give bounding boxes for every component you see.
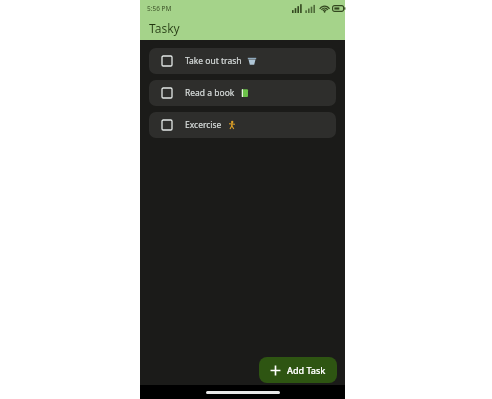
- staticText: Read a book: [185, 87, 235, 99]
- button[interactable]: Toggle Excercise: [157, 115, 177, 135]
- button[interactable]: Toggle Read a book: [149, 80, 336, 106]
- button[interactable]: Toggle Read a book: [157, 83, 177, 103]
- button[interactable]: Add Task: [259, 357, 337, 383]
- staticText: Excercise: [185, 119, 222, 131]
- staticText: Add Task: [287, 364, 326, 376]
- button[interactable]: Toggle Excercise: [149, 112, 336, 138]
- staticText: 5:56 PM: [147, 4, 172, 13]
- staticText: Take out trash: [185, 55, 242, 67]
- staticText: Tasky: [149, 20, 180, 36]
- button[interactable]: Toggle Take out trash: [157, 51, 177, 71]
- button[interactable]: Toggle Take out trash: [149, 48, 336, 74]
